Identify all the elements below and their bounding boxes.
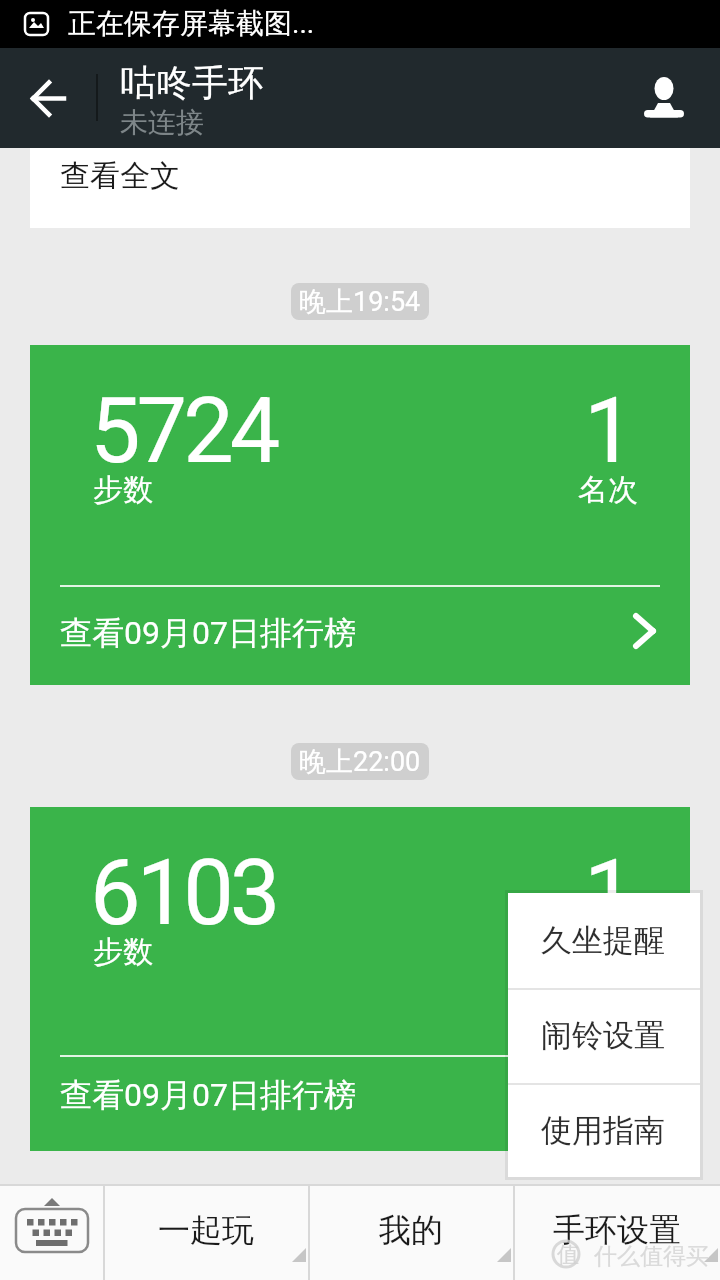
staticText: 名次	[578, 471, 638, 509]
staticText: 6103	[90, 841, 277, 946]
staticText: 步数	[93, 933, 153, 971]
button[interactable]: 5724	[30, 345, 690, 685]
button[interactable]: 久坐提醒	[508, 893, 700, 988]
staticText: 正在保存屏幕截图...	[68, 6, 315, 41]
button[interactable]: 闹铃设置	[508, 988, 700, 1083]
staticText: 名次	[578, 933, 638, 971]
staticText: 我的	[379, 1210, 443, 1250]
button[interactable]: 一起玩	[103, 1184, 308, 1280]
staticText: 什么值得买	[594, 1242, 709, 1271]
staticText: 1	[584, 379, 635, 484]
staticText: 查看全文	[60, 157, 180, 195]
staticText: 晚上22:00	[299, 745, 421, 779]
staticText: 1	[584, 841, 635, 946]
button[interactable]: 我的	[308, 1184, 513, 1280]
staticText: 久坐提醒	[541, 921, 665, 960]
button[interactable]: 查看全文	[30, 148, 690, 228]
button[interactable]	[630, 48, 720, 148]
staticText: 查看09月07日排行榜	[60, 613, 356, 653]
staticText: 值	[557, 1241, 579, 1269]
staticText: 使用指南	[541, 1111, 665, 1150]
button[interactable]: 手环设置	[513, 1184, 720, 1280]
button[interactable]	[0, 48, 90, 148]
button[interactable]: 6103	[30, 807, 690, 1151]
button[interactable]: 使用指南	[508, 1083, 700, 1178]
staticText: 5724	[90, 379, 277, 484]
staticText: 查看09月07日排行榜	[60, 1075, 356, 1115]
staticText: 咕咚手环	[120, 60, 264, 105]
staticText: 手环设置	[553, 1210, 681, 1250]
staticText: 未连接	[120, 105, 204, 140]
staticText: 闹铃设置	[541, 1016, 665, 1055]
staticText: 一起玩	[158, 1210, 254, 1250]
staticText: 步数	[93, 471, 153, 509]
staticText: 晚上19:54	[299, 285, 421, 319]
button[interactable]	[0, 1184, 103, 1280]
